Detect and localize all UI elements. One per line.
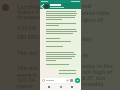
button[interactable] (45, 10, 80, 21)
staticText: Certified (17, 3, 41, 10)
staticText: aved little (82, 9, 110, 16)
button[interactable] (41, 78, 74, 83)
button[interactable] (45, 22, 80, 27)
staticText: 4.721% (17, 24, 37, 31)
button[interactable]: Recents (70, 85, 74, 89)
button[interactable] (45, 51, 80, 62)
staticText: 6.37, but (82, 74, 106, 81)
staticText: States T (17, 8, 39, 15)
staticText: nth high of (82, 68, 113, 75)
button[interactable] (45, 37, 80, 44)
button[interactable]: Send (75, 78, 80, 83)
button[interactable] (40, 3, 81, 9)
button[interactable] (45, 45, 80, 50)
staticText: changes (17, 13, 40, 20)
button[interactable]: Back (47, 85, 51, 89)
staticText: day (82, 35, 92, 42)
staticText: ights of (82, 16, 103, 23)
staticText: week h (17, 71, 37, 78)
staticText: steadily (82, 80, 104, 87)
staticText: The dol (17, 64, 38, 71)
staticText: The dol (17, 49, 38, 56)
staticText: oday in the (82, 62, 113, 69)
staticText: 107.34 (17, 76, 35, 83)
staticText: RBI MPC (17, 33, 40, 40)
staticText: rupee (17, 82, 34, 89)
button[interactable] (58, 69, 79, 77)
button[interactable] (45, 63, 80, 68)
staticText: ted (82, 2, 92, 9)
button[interactable]: Home (59, 85, 63, 89)
staticText: ay (82, 51, 89, 58)
button[interactable] (45, 28, 80, 36)
